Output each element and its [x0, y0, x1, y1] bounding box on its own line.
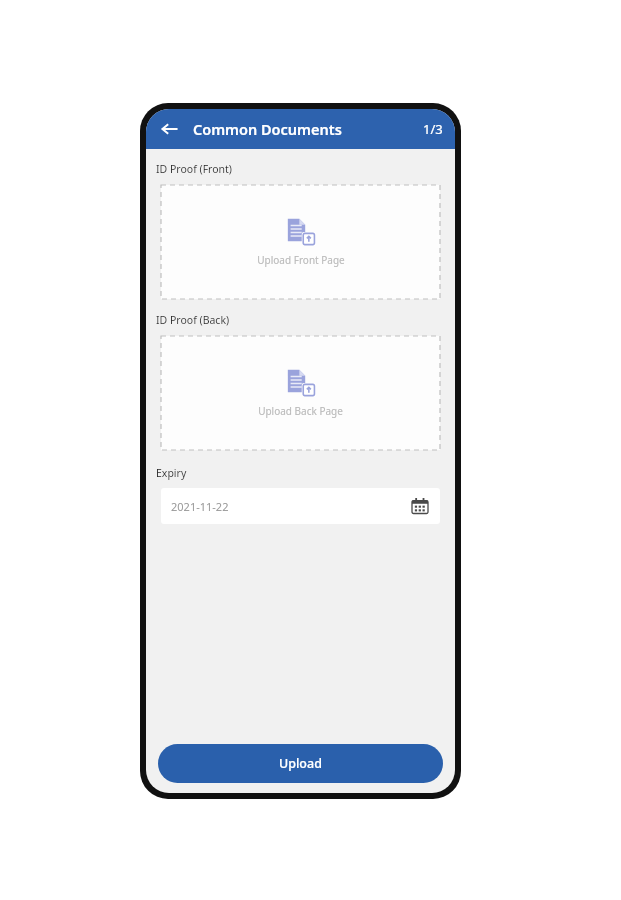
button[interactable]: Upload Back Page — [161, 336, 440, 450]
button[interactable]: 2021-11-22 — [161, 488, 440, 524]
button[interactable]: Pick date — [410, 496, 430, 516]
staticText: Upload Back Page — [258, 404, 343, 418]
staticText: 1/3 — [423, 120, 443, 138]
button[interactable]: Back — [158, 117, 182, 141]
staticText: 2021-11-22 — [171, 499, 229, 514]
staticText: Upload — [279, 755, 322, 772]
staticText: Common Documents — [193, 119, 342, 139]
button[interactable]: Upload Front Page — [161, 185, 440, 299]
button[interactable]: Upload — [158, 744, 443, 783]
staticText: ID Proof (Back) — [156, 313, 230, 327]
staticText: ID Proof (Front) — [156, 162, 232, 176]
staticText: Expiry — [156, 466, 187, 480]
staticText: Upload Front Page — [257, 253, 345, 267]
